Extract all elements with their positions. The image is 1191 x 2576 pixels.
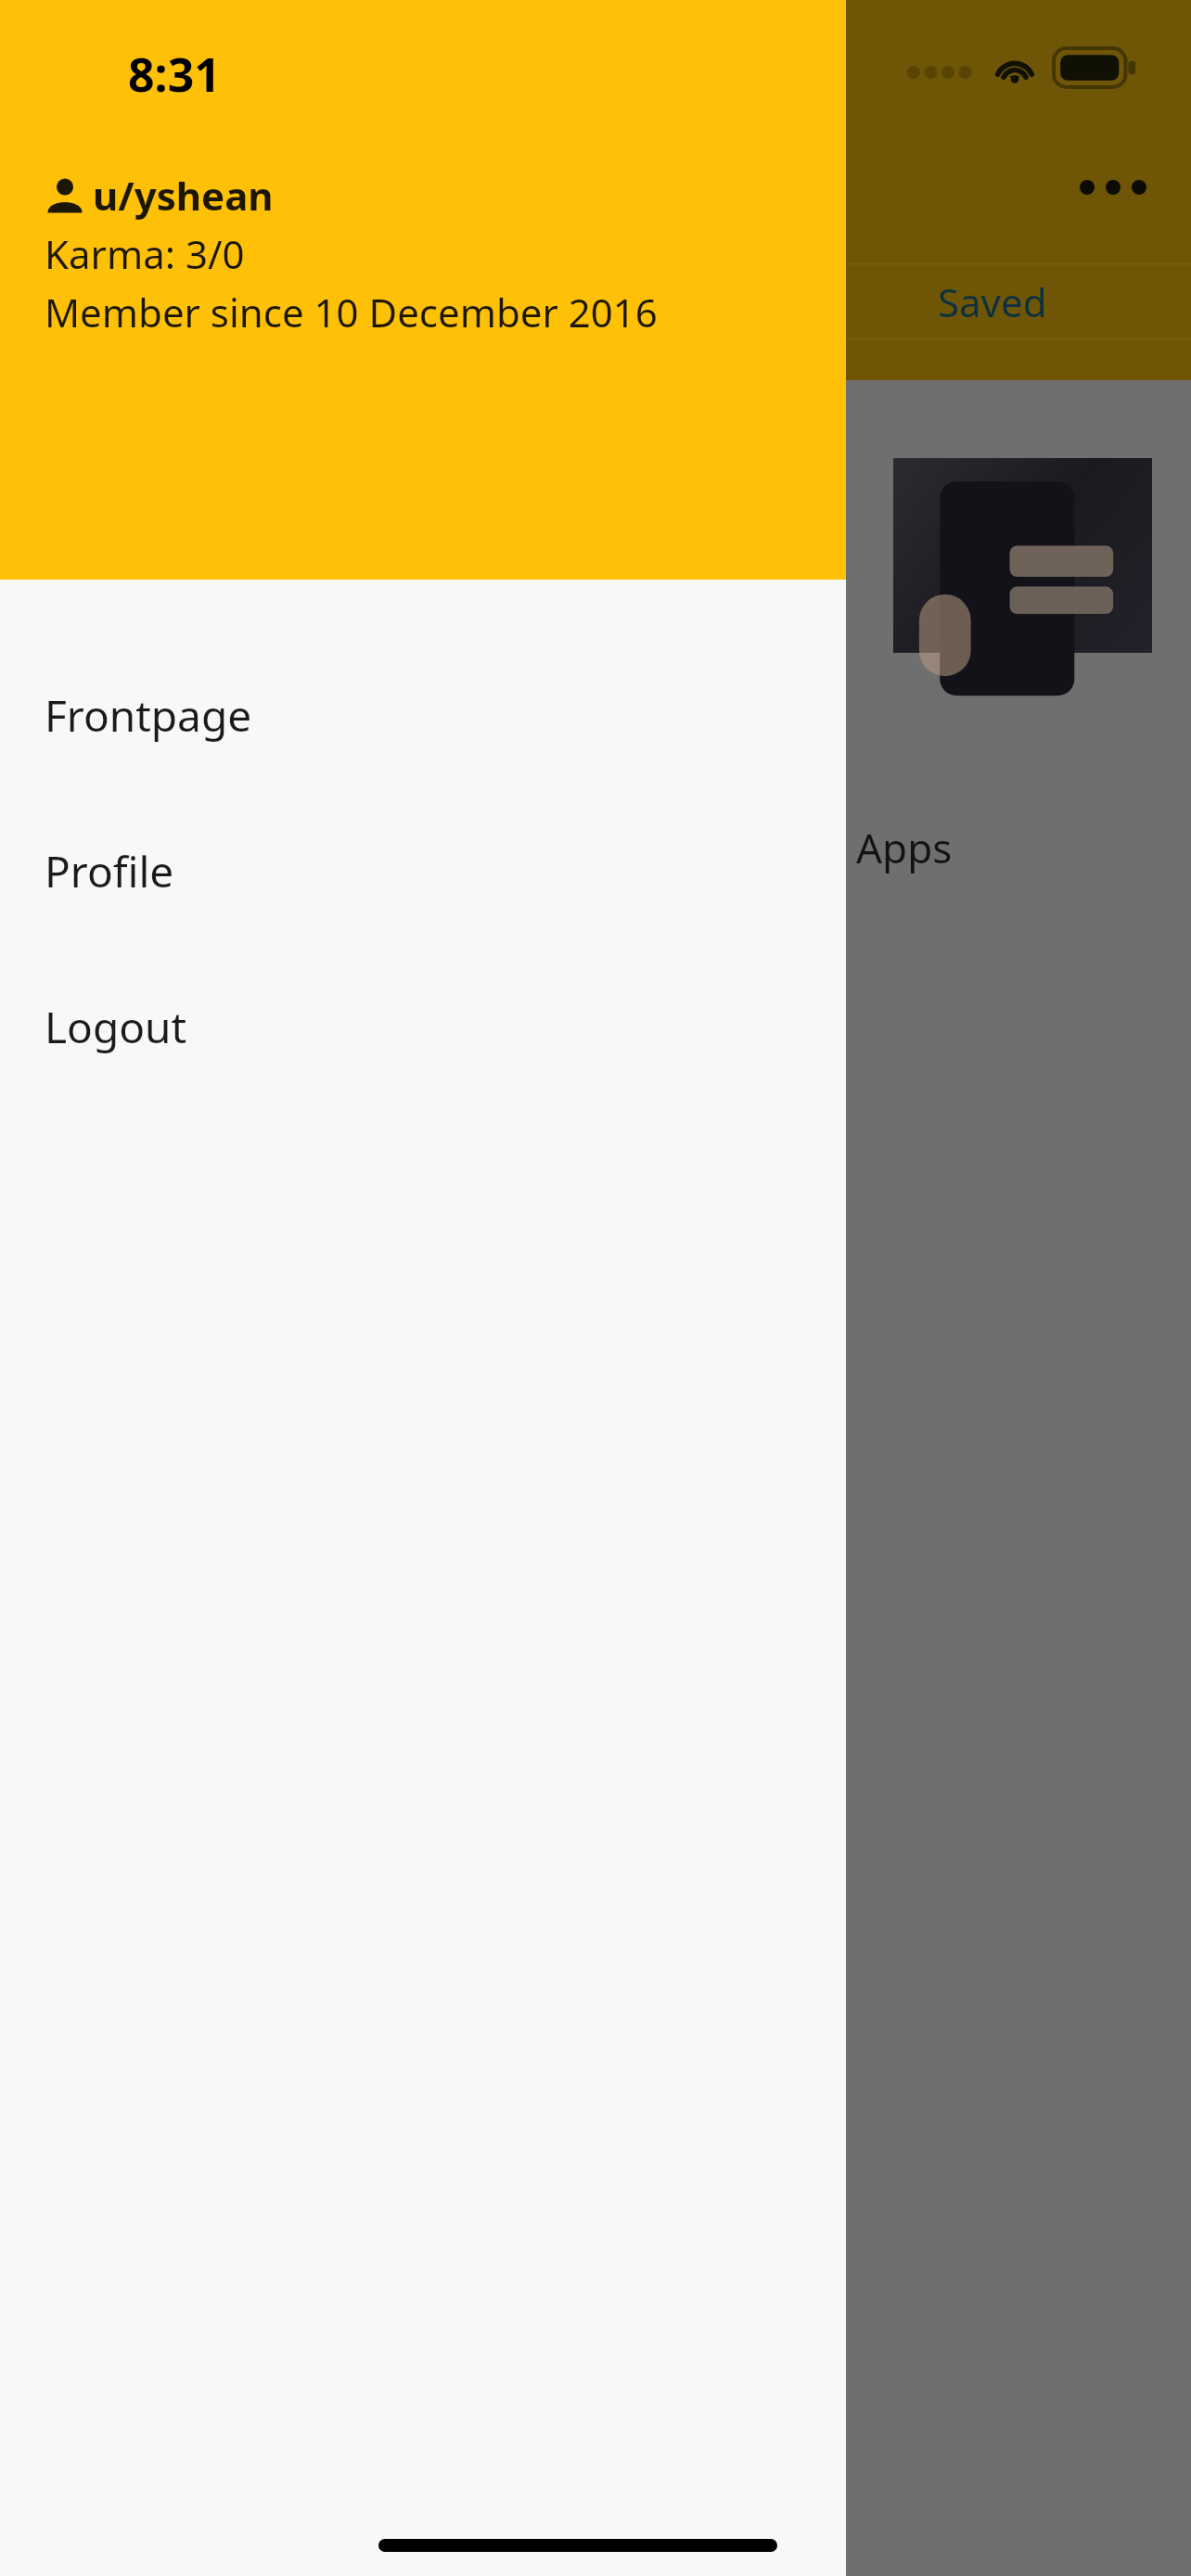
staticText: Member since 10 December 2016 [45, 286, 658, 338]
staticText: Logout [45, 998, 187, 1056]
button[interactable]: Profile [0, 793, 846, 949]
staticText: Frontpage [45, 686, 252, 745]
staticText: Saved [938, 275, 1047, 328]
button[interactable]: More options [1074, 158, 1152, 217]
staticText: 8:31 [128, 43, 221, 106]
staticText: Karma: 3/0 [45, 227, 245, 280]
button[interactable]: Logout [0, 949, 846, 1104]
button[interactable]: Saved [733, 263, 1191, 339]
staticText: Apps [856, 820, 953, 875]
staticText: u/yshean [93, 169, 274, 222]
button[interactable]: Frontpage [0, 637, 846, 793]
staticText: Profile [45, 842, 174, 900]
